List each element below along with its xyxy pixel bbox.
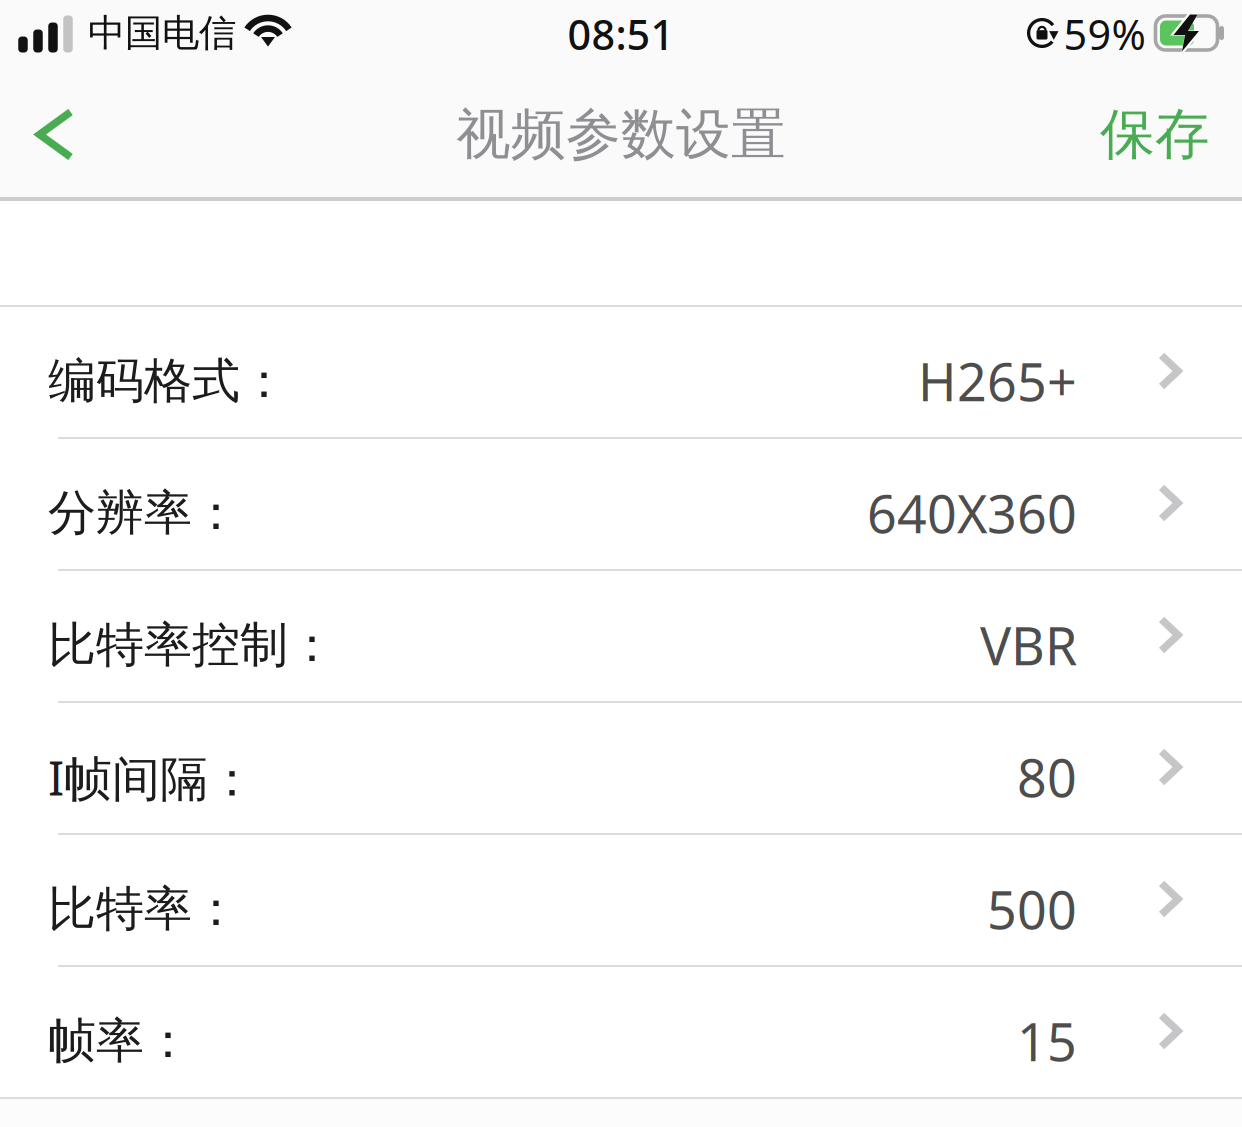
button[interactable]: 帧率：: [0, 967, 1242, 1097]
staticText: 15: [1017, 1006, 1077, 1076]
button[interactable]: 比特率：: [0, 835, 1242, 965]
staticText: 08:51: [567, 7, 674, 61]
staticText: 640X360: [867, 478, 1077, 548]
button[interactable]: 保存: [1068, 72, 1242, 196]
staticText: 500: [987, 874, 1077, 944]
staticText: 编码格式：: [48, 351, 288, 410]
staticText: 比特率：: [48, 879, 240, 938]
staticText: 分辨率：: [48, 483, 240, 542]
button[interactable]: I帧间隔：: [0, 703, 1242, 833]
button[interactable]: 编码格式：: [0, 307, 1242, 437]
staticText: 帧率：: [48, 1011, 192, 1070]
button[interactable]: Back: [0, 72, 110, 196]
staticText: 视频参数设置: [456, 101, 786, 168]
button[interactable]: 分辨率：: [0, 439, 1242, 569]
staticText: VBR: [980, 610, 1077, 680]
staticText: H265+: [918, 346, 1077, 416]
staticText: I帧间隔：: [48, 745, 256, 809]
staticText: 80: [1017, 742, 1077, 812]
button[interactable]: 比特率控制：: [0, 571, 1242, 701]
staticText: 中国电信: [88, 10, 236, 56]
staticText: 保存: [1100, 101, 1210, 168]
staticText: 比特率控制：: [48, 615, 336, 674]
staticText: 59%: [1063, 7, 1145, 61]
